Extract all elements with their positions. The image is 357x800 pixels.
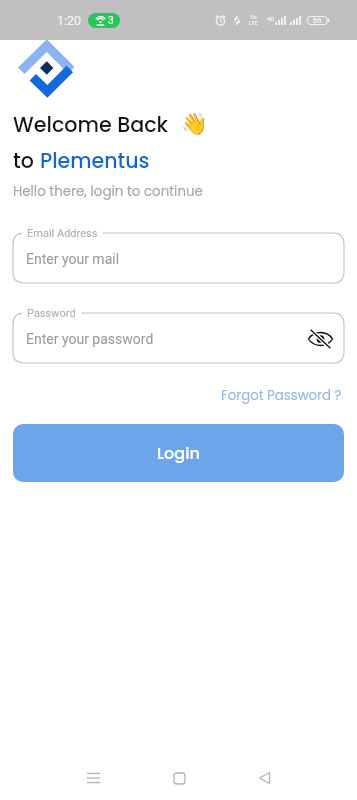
staticText: 1:20 <box>57 13 82 28</box>
staticText: 86 <box>313 16 322 25</box>
staticText: LTE <box>249 20 258 26</box>
button[interactable]: Recent apps <box>75 760 111 796</box>
staticText: Password <box>27 307 76 320</box>
staticText: 4G <box>267 15 275 22</box>
staticText: 👋 <box>181 111 208 136</box>
button[interactable]: Back <box>246 760 282 796</box>
staticText: Enter your password <box>26 331 154 347</box>
button[interactable]: Show password <box>308 330 333 348</box>
button[interactable]: Home <box>161 760 197 796</box>
staticText: Welcome Back <box>13 110 169 139</box>
staticText: Vo <box>250 14 257 20</box>
staticText: 3 <box>108 15 114 27</box>
staticText: to <box>13 146 40 175</box>
staticText: Login <box>157 442 200 464</box>
staticText: Email Address <box>27 227 98 240</box>
button[interactable]: Forgot Password ? <box>219 384 344 407</box>
staticText: Hello there, login to continue <box>13 182 203 201</box>
button[interactable]: Login <box>13 424 344 482</box>
staticText: Plementus <box>40 146 150 175</box>
staticText: Enter your mail <box>26 251 120 267</box>
staticText: Forgot Password ? <box>221 386 342 405</box>
